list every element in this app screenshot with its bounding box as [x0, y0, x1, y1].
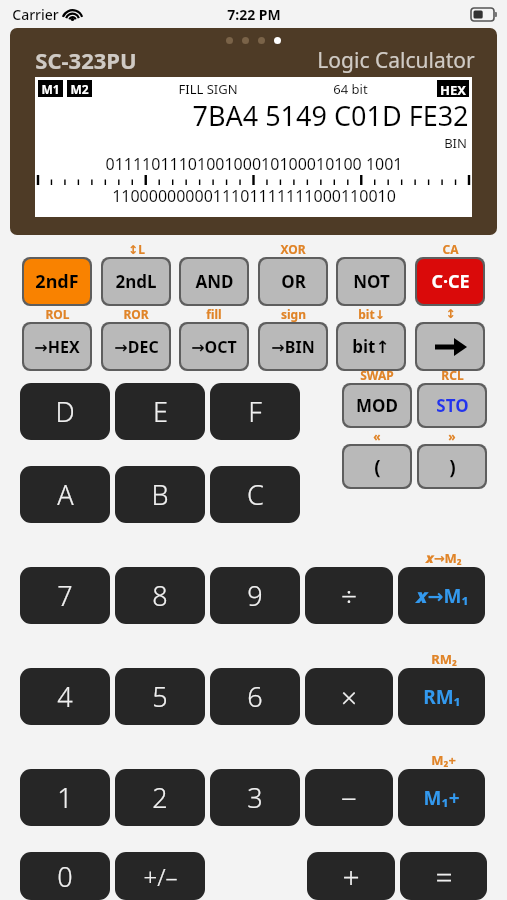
staticText: = — [435, 856, 453, 897]
staticText: + — [342, 856, 360, 897]
staticText: SWAP — [360, 367, 394, 383]
staticText: 8 — [152, 577, 168, 614]
staticText: bit↓ — [358, 306, 385, 322]
staticText: 7BA4 5149 C01D FE32 — [192, 97, 469, 134]
button[interactable]: B — [115, 466, 205, 523]
staticText: SC-323PU — [35, 45, 137, 75]
staticText: HEX — [440, 81, 466, 96]
staticText: STO — [436, 394, 469, 417]
staticText: XOR — [280, 241, 306, 257]
staticText: 𝒙→M₂ — [425, 549, 462, 567]
button[interactable]: F — [210, 383, 300, 440]
staticText: AND — [195, 270, 234, 293]
button[interactable]: OR — [258, 257, 328, 306]
button[interactable]: →DEC — [101, 322, 171, 371]
staticText: E — [153, 393, 168, 430]
staticText: 3 — [247, 779, 263, 816]
staticText: 2ndF — [35, 269, 79, 294]
button[interactable]: 8 — [115, 567, 205, 624]
staticText: ÷ — [341, 577, 357, 615]
button[interactable]: C — [210, 466, 300, 523]
staticText: C — [247, 476, 264, 513]
staticText: D — [55, 393, 75, 430]
staticText: fill — [206, 306, 222, 322]
staticText: Logic Calculator — [317, 46, 475, 75]
button[interactable]: →BIN — [258, 322, 328, 371]
button[interactable]: ) — [417, 444, 487, 489]
button[interactable]: 2ndL — [101, 257, 171, 306]
staticText: 5 — [152, 678, 168, 715]
button[interactable]: D — [20, 383, 110, 440]
button[interactable]: − — [305, 769, 393, 826]
staticText: − — [341, 779, 357, 817]
staticText: RM₁ — [423, 684, 461, 710]
staticText: RM₂ — [431, 650, 457, 668]
button[interactable]: STO — [417, 383, 487, 428]
staticText: F — [248, 393, 262, 430]
button[interactable]: RM₁ — [398, 668, 485, 725]
button[interactable]: bit↑ — [336, 322, 406, 371]
staticText: BIN — [444, 134, 467, 152]
staticText: ↕ — [445, 307, 456, 321]
staticText: NOT — [353, 270, 390, 293]
staticText: ROL — [45, 306, 70, 322]
staticText: Carrier — [12, 5, 59, 24]
staticText: 64 bit — [333, 80, 368, 97]
staticText: 6 — [247, 678, 263, 715]
button[interactable]: 3 — [210, 769, 300, 826]
staticText: 7 — [57, 577, 73, 614]
button[interactable]: 2ndF — [22, 257, 92, 306]
staticText: →OCT — [191, 336, 237, 358]
staticText: +/– — [143, 860, 178, 893]
button[interactable]: × — [305, 668, 393, 725]
staticText: 0 — [57, 858, 73, 895]
button[interactable]: Plus — [307, 852, 395, 900]
staticText: » — [448, 428, 456, 444]
staticText: B — [151, 476, 169, 513]
staticText: MOD — [356, 394, 398, 417]
button[interactable]: A — [20, 466, 110, 523]
button[interactable]: AND — [179, 257, 249, 306]
staticText: 9 — [247, 577, 263, 614]
button[interactable]: 2 — [115, 769, 205, 826]
button[interactable]: →OCT — [179, 322, 249, 371]
button[interactable]: 9 — [210, 567, 300, 624]
button[interactable]: NOT — [336, 257, 406, 306]
staticText: 𝒙→M₁ — [415, 583, 469, 609]
staticText: « — [373, 428, 381, 444]
staticText: ROR — [123, 306, 149, 322]
button[interactable]: Equals — [400, 852, 487, 900]
staticText: RCL — [441, 367, 464, 383]
staticText: ) — [449, 454, 456, 480]
button[interactable]: 4 — [20, 668, 110, 725]
staticText: M2 — [70, 81, 89, 96]
staticText: A — [57, 476, 74, 513]
button[interactable]: ÷ — [305, 567, 393, 624]
button[interactable]: +/– — [115, 852, 205, 900]
button[interactable]: 0 — [20, 852, 110, 900]
button[interactable]: MOD — [342, 383, 412, 428]
staticText: 4 — [57, 678, 73, 715]
staticText: 1100000000011101111111000110010 — [112, 185, 396, 207]
staticText: FILL SIGN — [178, 80, 238, 97]
staticText: M1 — [41, 81, 60, 96]
button[interactable]: ( — [342, 444, 412, 489]
button[interactable]: Shift right — [415, 322, 485, 371]
button[interactable]: M₁+ — [398, 769, 485, 826]
button[interactable]: 5 — [115, 668, 205, 725]
staticText: 2 — [152, 779, 168, 816]
staticText: →BIN — [271, 336, 315, 358]
button[interactable]: 6 — [210, 668, 300, 725]
button[interactable]: →HEX — [22, 322, 92, 371]
staticText: bit↑ — [352, 335, 390, 358]
staticText: 0111101110100100010100010100 1001 — [105, 153, 403, 175]
button[interactable]: C·CE — [415, 257, 485, 306]
button[interactable]: 7 — [20, 567, 110, 624]
staticText: →HEX — [34, 336, 80, 358]
button[interactable]: 1 — [20, 769, 110, 826]
staticText: ( — [374, 454, 381, 480]
button[interactable]: E — [115, 383, 205, 440]
button[interactable]: 𝒙→M₁ — [398, 567, 485, 624]
staticText: M₂+ — [431, 751, 456, 769]
staticText: M₁+ — [423, 785, 460, 811]
